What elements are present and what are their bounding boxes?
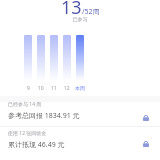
staticText: 12 <box>64 85 70 92</box>
staticText: 11 <box>51 85 57 92</box>
button[interactable]: 已经参与 14 周 <box>0 101 160 123</box>
other: Detail <box>141 140 151 150</box>
staticText: 已参与 <box>0 16 160 22</box>
staticText: 已经参与 14 周 <box>8 101 42 108</box>
staticText: 13 <box>61 0 82 20</box>
staticText: /52周 <box>82 7 100 17</box>
staticText: 使用 12 张回馈金 <box>8 130 47 137</box>
other: Detail <box>141 114 151 124</box>
staticText: 10 <box>38 85 44 92</box>
staticText: 本周 <box>75 85 85 91</box>
staticText: 参考总回报 1834.91 元 <box>8 111 80 121</box>
button[interactable]: 使用 12 张回馈金 <box>0 130 160 152</box>
staticText: 累计抵现 46.49 元 <box>8 140 65 150</box>
staticText: 9 <box>27 85 30 92</box>
